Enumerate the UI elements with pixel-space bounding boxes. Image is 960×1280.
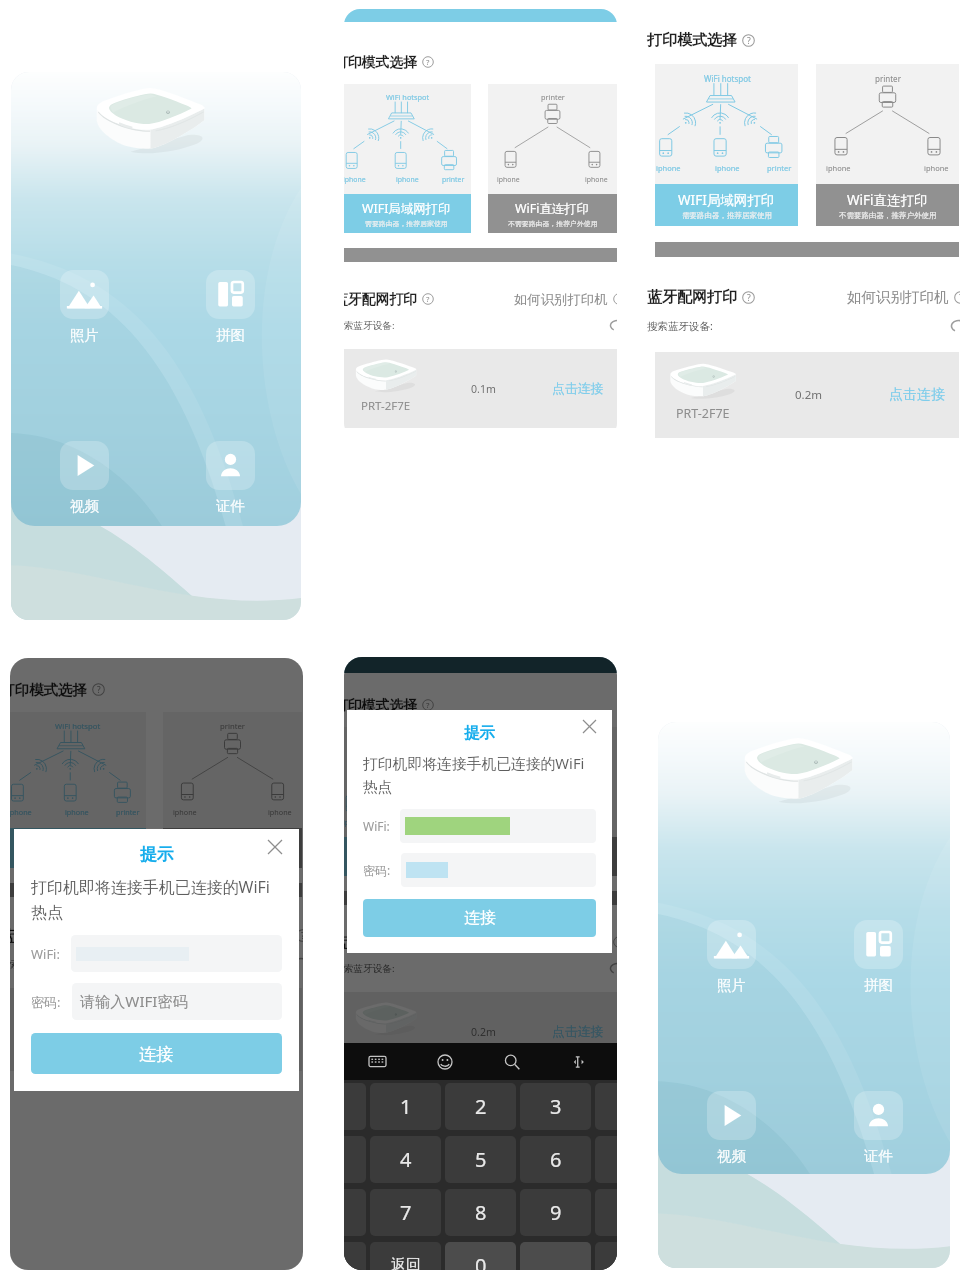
staticText: 打印模式选择 bbox=[10, 681, 87, 699]
staticText: 蓝牙配网打印 bbox=[647, 288, 737, 307]
staticText: ? bbox=[97, 930, 101, 941]
staticText: ? bbox=[301, 930, 303, 941]
staticText: 如何识别打印机 bbox=[514, 291, 608, 308]
staticText: WiFi: bbox=[31, 945, 60, 963]
button[interactable]: 8 bbox=[445, 1189, 516, 1236]
button[interactable]: 证件 bbox=[206, 441, 255, 515]
staticText: ? bbox=[97, 684, 101, 695]
staticText: printer bbox=[541, 92, 565, 102]
button[interactable]: PRT-2F7E bbox=[344, 349, 617, 428]
staticText: WiFi hotspot bbox=[704, 73, 751, 84]
button[interactable]: WiFi hotspot bbox=[344, 84, 471, 233]
button[interactable]: 1 bbox=[370, 1083, 441, 1130]
button[interactable]: 5 bbox=[445, 1136, 516, 1183]
staticText: ? bbox=[747, 292, 751, 304]
button[interactable]: 视频 bbox=[707, 1091, 756, 1165]
staticText: 密码: bbox=[31, 993, 61, 1011]
staticText: 不需要路由器，推荐户外使用 bbox=[508, 219, 598, 228]
button[interactable]: 照片 bbox=[60, 270, 109, 344]
button[interactable]: PRT-2F7E bbox=[344, 992, 617, 1071]
staticText: 证件 bbox=[216, 497, 245, 515]
staticText: 如何识别打印机 bbox=[847, 288, 949, 306]
staticText: 照片 bbox=[717, 976, 746, 994]
staticText: 不需要路由器，推荐户外使用 bbox=[839, 211, 937, 220]
staticText: printer bbox=[442, 175, 465, 184]
button[interactable]: 3 bbox=[520, 1083, 591, 1130]
button[interactable]: 连接 bbox=[31, 1033, 282, 1074]
staticText: 3 bbox=[550, 1093, 562, 1120]
staticText: 搜索蓝牙设备: bbox=[647, 319, 713, 333]
button[interactable]: 4 bbox=[370, 1136, 441, 1183]
staticText: PRT-2F7E bbox=[361, 1041, 411, 1057]
staticText: WIFI局域网打印 bbox=[362, 843, 451, 860]
staticText: iphone bbox=[715, 163, 740, 173]
staticText: iphone bbox=[924, 163, 949, 173]
staticText: 0.1m bbox=[471, 382, 496, 396]
staticText: WiFi直连打印 bbox=[194, 834, 272, 852]
button[interactable]: Close bbox=[583, 720, 596, 733]
button[interactable]: 0 bbox=[445, 1242, 516, 1270]
button[interactable] bbox=[344, 1242, 366, 1270]
staticText: 0.1m bbox=[142, 1022, 169, 1037]
button[interactable]: WiFi hotspot bbox=[344, 727, 471, 876]
staticText: 需要路由器，推荐居家使用 bbox=[365, 219, 448, 228]
button[interactable]: 2 bbox=[445, 1083, 516, 1130]
staticText: 打印模式选择 bbox=[647, 31, 737, 50]
button[interactable]: WiFi hotspot bbox=[10, 712, 146, 868]
button[interactable]: printer bbox=[488, 727, 617, 876]
button[interactable]: printer bbox=[163, 712, 302, 868]
button[interactable]: PRT-2F7E bbox=[655, 352, 959, 438]
staticText: 搜索蓝牙设备: bbox=[344, 319, 395, 332]
button[interactable]: PRT-2F7E bbox=[10, 988, 302, 1071]
staticText: 连接 bbox=[464, 908, 496, 928]
staticText: 搜索蓝牙设备: bbox=[344, 962, 395, 975]
staticText: WiFi: bbox=[363, 818, 390, 834]
button[interactable]: 9 bbox=[520, 1189, 591, 1236]
staticText: iphone bbox=[826, 163, 851, 173]
staticText: 如何识别打印机 bbox=[514, 934, 608, 951]
button[interactable]: 视频 bbox=[60, 441, 109, 515]
staticText: 点击连接 bbox=[552, 381, 604, 397]
staticText: 蓝牙配网打印 bbox=[344, 934, 417, 951]
staticText: 点击连接 bbox=[235, 1021, 289, 1038]
staticText: ? bbox=[426, 57, 430, 68]
staticText: printer bbox=[767, 163, 792, 173]
staticText: iphone bbox=[497, 818, 520, 827]
staticText: ? bbox=[747, 35, 751, 47]
button[interactable]: printer bbox=[816, 64, 959, 226]
staticText: 6 bbox=[550, 1146, 562, 1173]
staticText: 提示 bbox=[140, 844, 174, 865]
staticText: 连接 bbox=[139, 1043, 174, 1065]
staticText: 1 bbox=[400, 1093, 412, 1120]
staticText: 打印模式选择 bbox=[344, 697, 417, 714]
button[interactable]: 6 bbox=[520, 1136, 591, 1183]
staticText: 打印机即将连接手机已连接的WiFi热点 bbox=[31, 876, 282, 922]
staticText: WIFI局域网打印 bbox=[678, 191, 775, 209]
staticText: 需要路由器，推荐居家使用 bbox=[365, 862, 448, 871]
staticText: WiFi直连打印 bbox=[847, 191, 928, 209]
button[interactable]: 拼图 bbox=[854, 920, 903, 994]
button[interactable] bbox=[595, 1242, 617, 1270]
button[interactable]: 返回 bbox=[370, 1242, 441, 1270]
button[interactable]: 拼图 bbox=[206, 270, 255, 344]
button[interactable]: 连接 bbox=[363, 899, 596, 937]
button[interactable]: 证件 bbox=[854, 1091, 903, 1165]
button[interactable]: Close bbox=[268, 840, 282, 854]
button[interactable]: WiFi hotspot bbox=[655, 64, 798, 226]
staticText: iphone bbox=[10, 807, 32, 817]
button[interactable]: 7 bbox=[370, 1189, 441, 1236]
button[interactable]: 照片 bbox=[707, 920, 756, 994]
button[interactable]: printer bbox=[488, 84, 617, 233]
staticText: printer bbox=[116, 807, 140, 817]
staticText: 密码: bbox=[363, 862, 391, 878]
